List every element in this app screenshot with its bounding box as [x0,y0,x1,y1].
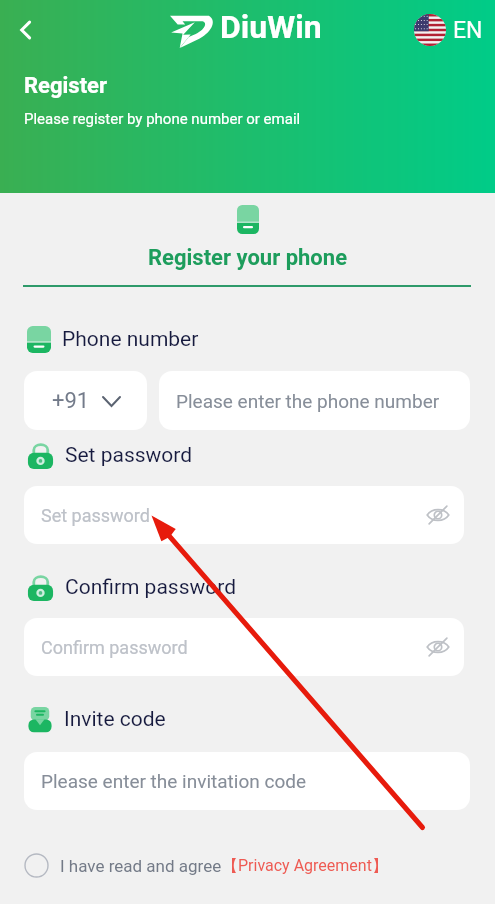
staticText: I have read and agree [60,856,222,876]
button[interactable]: Confirm password [24,618,464,676]
staticText: Set password [41,505,150,526]
staticText: Register your phone [148,245,348,271]
button[interactable]: 【Privacy Agreement】 [222,856,388,876]
button[interactable]: EN [414,14,483,46]
button[interactable]: +91 [24,371,147,430]
staticText: Register [24,73,108,99]
staticText: Phone number [62,327,199,352]
button[interactable]: Agree checkbox [24,853,49,878]
button[interactable]: Please enter the invitation code [24,752,470,810]
staticText: EN [453,17,483,44]
staticText: DiuWin [220,8,322,46]
staticText: Set password [65,443,193,468]
button[interactable]: Set password [24,486,464,544]
button[interactable]: Please enter the phone number [159,371,470,430]
staticText: Confirm password [65,575,237,600]
button[interactable]: Back [8,12,44,48]
staticText: Please enter the invitation code [41,770,307,792]
staticText: Invite code [64,707,166,732]
button[interactable]: Show password [424,633,452,661]
button[interactable]: Show password [424,501,452,529]
staticText: Please enter the phone number [176,390,440,412]
staticText: Confirm password [41,637,188,658]
staticText: +91 [52,388,90,414]
staticText: Please register by phone number or email [24,110,301,128]
